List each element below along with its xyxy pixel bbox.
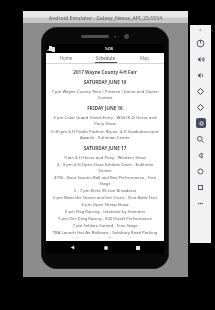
staticText: Schedule: [86, 55, 125, 61]
staticText: 4756 - Boot Scootin Ball and Box Perform…: [51, 175, 159, 187]
button[interactable]: Zoom: [190, 131, 211, 147]
staticText: FRIDAY JUNE 16: [51, 105, 159, 111]
button[interactable]: Back: [190, 147, 211, 163]
staticText: 6 pm Open Sheep Show: [51, 202, 159, 208]
staticText: 5 - 7 pm Kicks 96 Live Broadcast: [51, 188, 159, 194]
staticText: 6 pm Meet the Queen and her Court - Firs…: [51, 195, 159, 201]
staticText: 6 pm Flag Raising - trackside by Veteran…: [51, 209, 159, 215]
button[interactable]: Overview: [190, 179, 211, 195]
staticText: TBA Launch Hot Air Balloons - Salisbury …: [51, 230, 159, 238]
button[interactable]: Home: [46, 53, 86, 62]
button[interactable]: Home: [100, 242, 111, 253]
staticText: ×: [190, 27, 211, 34]
staticText: 2017 Wayne County 4-H Fair: [51, 69, 159, 75]
button[interactable]: Volume down: [190, 67, 211, 83]
staticText: Map: [125, 55, 164, 61]
staticText: 1:06: [56, 46, 162, 52]
button[interactable]: Volume up: [190, 51, 211, 67]
staticText: 7 pm Seldom Sunted - Free Stage: [51, 223, 159, 229]
staticText: 4 - 9 pm 4-H Open Class Exhibits Open - …: [51, 162, 159, 174]
staticText: Home: [46, 55, 86, 61]
staticText: 7 pm Wayne County Teen / Preteen / Junio…: [51, 89, 159, 101]
staticText: SATURDAY JUNE 17: [51, 145, 159, 151]
staticText: 9 am 4-H Horse and Pony - Western Show: [51, 155, 159, 161]
staticText: 6:30 pm 4-H Public Fashion Revue, 4-H Gr…: [51, 129, 159, 141]
button[interactable]: Rotate left: [190, 83, 211, 99]
button[interactable]: Home: [190, 163, 211, 179]
button[interactable]: Map: [125, 53, 164, 62]
staticText: 6 pm Color Guard Grand Entry - Wild (K-2…: [51, 115, 159, 127]
staticText: SATURDAY JUNE 10: [51, 79, 159, 85]
button[interactable]: Back: [67, 242, 78, 253]
button[interactable]: More: [190, 195, 211, 211]
button[interactable]: Take screenshot: [190, 115, 211, 131]
staticText: Android Emulator - Galaxy_Nexus_API_25:5…: [23, 14, 188, 21]
button[interactable]: Recent apps: [132, 242, 143, 253]
button[interactable]: Schedule: [86, 53, 125, 62]
button[interactable]: Power: [190, 35, 211, 51]
button[interactable]: Rotate right: [190, 99, 211, 115]
staticText: 7 pm Dirt Drag Racing - 502 Diesel Perfo…: [51, 216, 159, 222]
